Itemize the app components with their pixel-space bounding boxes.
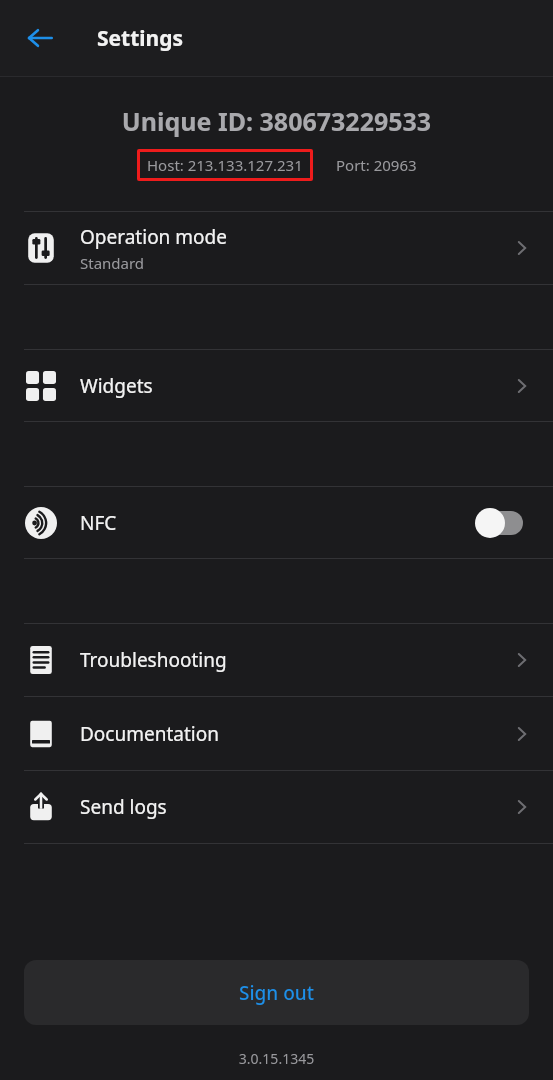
button[interactable]: Back: [14, 12, 66, 64]
button[interactable]: Sign out: [24, 960, 529, 1025]
staticText: Documentation: [80, 721, 219, 747]
staticText: Port: 20963: [336, 155, 417, 175]
staticText: NFC: [80, 510, 117, 536]
staticText: Sign out: [239, 980, 315, 1006]
staticText: Settings: [97, 24, 184, 53]
button[interactable]: NFC: [0, 487, 553, 558]
staticText: Standard: [80, 253, 145, 273]
button[interactable]: Troubleshooting: [0, 624, 553, 696]
staticText: Host: 213.133.127.231: [147, 155, 303, 175]
staticText: Unique ID: 380673229533: [0, 104, 553, 138]
button[interactable]: Widgets: [0, 350, 553, 421]
staticText: Send logs: [80, 794, 167, 820]
button[interactable]: NFC toggle: [475, 508, 523, 538]
button[interactable]: Operation mode: [0, 212, 553, 284]
button[interactable]: Send logs: [0, 771, 553, 843]
staticText: Operation mode: [80, 224, 227, 250]
staticText: Troubleshooting: [80, 647, 227, 673]
staticText: Widgets: [80, 373, 153, 399]
button[interactable]: Documentation: [0, 697, 553, 770]
staticText: 3.0.15.1345: [0, 1049, 553, 1068]
